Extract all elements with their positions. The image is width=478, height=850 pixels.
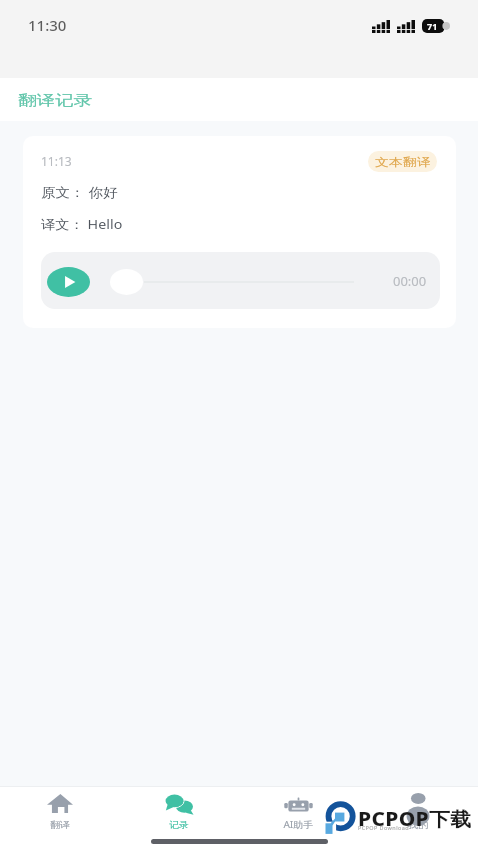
staticText: 翻译 [50,819,70,830]
button[interactable]: AI助手 [238,787,358,850]
staticText: PCPOP Download [358,824,409,831]
staticText: 译文： Hello [41,215,122,233]
staticText: 11:30 [28,15,67,35]
button[interactable]: 11:13 [23,136,456,328]
button[interactable]: 我的 [358,787,478,850]
staticText: AI助手 [283,818,314,830]
staticText: 我的 [408,819,428,830]
staticText: 71 [427,20,438,32]
staticText: PCPOP下载 [358,806,472,832]
button[interactable]: 翻译 [0,787,119,850]
button[interactable]: Play [47,267,90,297]
staticText: 记录 [169,819,189,830]
staticText: 原文： 你好 [41,183,118,201]
staticText: 00:00 [393,272,427,290]
button[interactable]: 记录 [119,787,238,850]
staticText: 文本翻译 [375,155,431,169]
staticText: 翻译记录 [18,92,92,110]
staticText: 11:13 [41,153,72,169]
button[interactable]: 文本翻译 [368,151,437,172]
